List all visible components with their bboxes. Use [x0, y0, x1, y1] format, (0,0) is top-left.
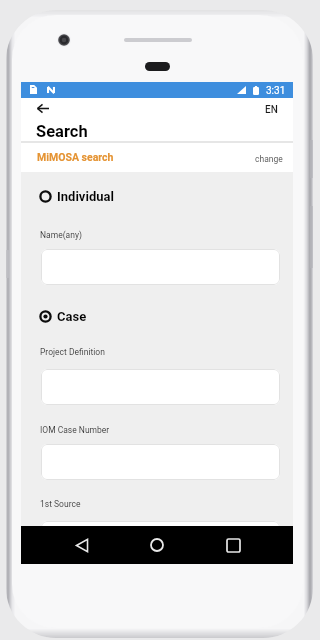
staticText: IOM Case Number [40, 425, 110, 435]
staticText: Case [57, 309, 87, 324]
button[interactable]: Recent apps [219, 531, 247, 559]
button[interactable]: Back [68, 531, 96, 559]
staticText: Individual [57, 189, 114, 204]
button[interactable]: Back [34, 100, 51, 117]
button[interactable] [41, 521, 280, 557]
button[interactable]: Individual [39, 187, 159, 205]
button[interactable] [41, 369, 280, 405]
staticText: change [255, 154, 283, 164]
staticText: Search [36, 122, 88, 141]
button[interactable] [41, 444, 280, 480]
staticText: Project Definition [40, 347, 105, 357]
staticText: Name(any) [40, 230, 82, 240]
button[interactable] [41, 249, 280, 285]
staticText: EN [265, 104, 278, 116]
staticText: MiMOSA search [37, 151, 114, 163]
staticText: 1st Source [40, 499, 81, 509]
button[interactable]: Case [39, 307, 159, 325]
staticText: 3:31 [266, 85, 286, 97]
button[interactable]: change [254, 153, 284, 165]
button[interactable]: EN [263, 102, 280, 118]
button[interactable]: Home [143, 531, 171, 559]
